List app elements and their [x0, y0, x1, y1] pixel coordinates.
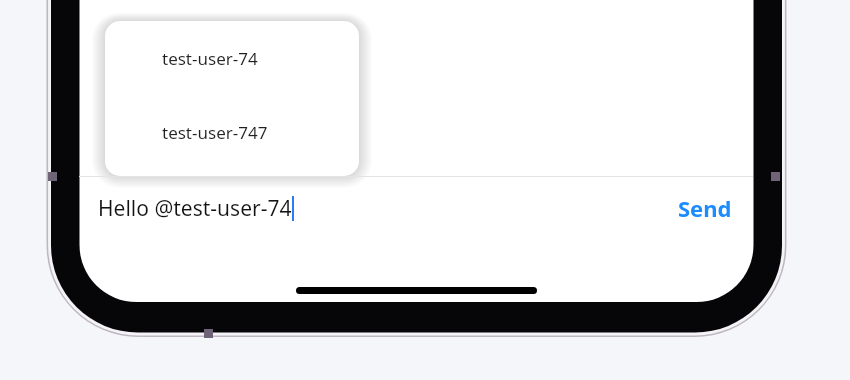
staticText: Hello @test-user-74 [98, 194, 292, 223]
button[interactable]: test-user-74 [105, 21, 359, 95]
button[interactable]: Hello @test-user-74 [79, 177, 678, 239]
button[interactable]: test-user-747 [105, 95, 359, 169]
staticText: Send [678, 193, 732, 223]
other: Home indicator [296, 287, 537, 294]
staticText: test-user-74 [162, 47, 258, 70]
button[interactable]: Send [678, 177, 732, 239]
staticText: test-user-747 [162, 121, 268, 144]
